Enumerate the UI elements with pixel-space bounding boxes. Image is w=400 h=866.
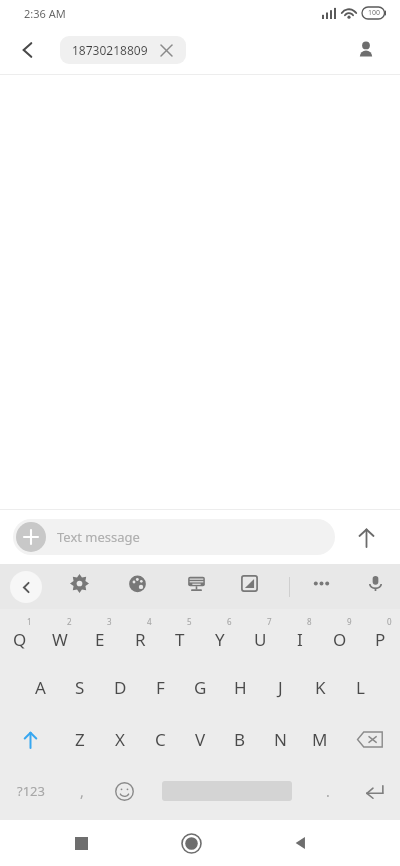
button[interactable]: Theme bbox=[118, 564, 156, 602]
staticText: M bbox=[312, 728, 328, 751]
staticText: G bbox=[194, 676, 207, 699]
button[interactable]: Keyboard layout bbox=[177, 564, 215, 602]
staticText: 2:36 AM bbox=[24, 6, 66, 21]
staticText: W bbox=[52, 628, 68, 651]
button[interactable]: 7 bbox=[240, 609, 280, 661]
button[interactable]: Attach bbox=[16, 522, 46, 552]
button[interactable]: Enter bbox=[348, 765, 400, 817]
button[interactable]: K bbox=[300, 661, 340, 713]
staticText: 0 bbox=[387, 616, 392, 627]
staticText: , bbox=[80, 782, 84, 801]
staticText: N bbox=[274, 728, 287, 751]
staticText: ?123 bbox=[17, 782, 45, 800]
staticText: Q bbox=[13, 628, 27, 651]
button[interactable]: Recents bbox=[58, 820, 104, 866]
staticText: H bbox=[234, 676, 247, 699]
button[interactable]: 8 bbox=[280, 609, 320, 661]
button[interactable]: L bbox=[340, 661, 380, 713]
button[interactable]: J bbox=[260, 661, 300, 713]
button[interactable]: B bbox=[220, 713, 260, 765]
staticText: C bbox=[155, 728, 166, 751]
staticText: B bbox=[234, 728, 246, 751]
staticText: K bbox=[315, 676, 326, 699]
staticText: R bbox=[135, 628, 146, 651]
staticText: P bbox=[375, 628, 386, 651]
staticText: 1 bbox=[27, 616, 32, 627]
button[interactable]: N bbox=[260, 713, 300, 765]
staticText: A bbox=[35, 676, 46, 699]
staticText: T bbox=[175, 628, 185, 651]
button[interactable]: Remove recipient bbox=[158, 42, 174, 58]
staticText: S bbox=[75, 676, 85, 699]
button[interactable]: Shift bbox=[0, 713, 60, 765]
button[interactable]: ?123 bbox=[0, 765, 62, 817]
button[interactable]: S bbox=[60, 661, 100, 713]
button[interactable]: Collapse toolbar bbox=[10, 571, 42, 603]
staticText: Text message bbox=[57, 528, 140, 546]
button[interactable]: 9 bbox=[320, 609, 360, 661]
button[interactable]: Emoji bbox=[102, 765, 146, 817]
button[interactable]: V bbox=[180, 713, 220, 765]
button[interactable]: 18730218809 bbox=[60, 36, 186, 64]
button[interactable]: Attach bbox=[13, 519, 335, 555]
staticText: D bbox=[114, 676, 127, 699]
button[interactable]: A bbox=[20, 661, 60, 713]
button[interactable]: Home bbox=[168, 820, 214, 866]
staticText: O bbox=[333, 628, 347, 651]
button[interactable]: Z bbox=[60, 713, 100, 765]
staticText: 4 bbox=[147, 616, 152, 627]
button[interactable]: G bbox=[180, 661, 220, 713]
button[interactable]: Send bbox=[346, 517, 386, 557]
staticText: X bbox=[115, 728, 125, 751]
button[interactable]: 5 bbox=[160, 609, 200, 661]
staticText: I bbox=[297, 628, 303, 651]
button[interactable]: M bbox=[300, 713, 340, 765]
staticText: 6 bbox=[227, 616, 232, 627]
staticText: 5 bbox=[187, 616, 192, 627]
staticText: 18730218809 bbox=[72, 42, 148, 58]
button[interactable]: Delete bbox=[340, 713, 400, 765]
staticText: 7 bbox=[267, 616, 272, 627]
button[interactable]: Handwriting bbox=[230, 564, 268, 602]
staticText: 2 bbox=[67, 616, 72, 627]
button[interactable]: Settings bbox=[60, 564, 98, 602]
button[interactable]: 6 bbox=[200, 609, 240, 661]
staticText: U bbox=[254, 628, 267, 651]
staticText: 3 bbox=[107, 616, 112, 627]
staticText: 9 bbox=[347, 616, 352, 627]
button[interactable]: F bbox=[140, 661, 180, 713]
staticText: 100 bbox=[368, 8, 381, 18]
button[interactable]: 0 bbox=[360, 609, 400, 661]
staticText: L bbox=[356, 676, 365, 699]
button[interactable]: More options bbox=[302, 564, 340, 602]
button[interactable]: 1 bbox=[0, 609, 40, 661]
staticText: . bbox=[326, 782, 330, 801]
button[interactable]: Back bbox=[8, 30, 48, 70]
button[interactable]: 4 bbox=[120, 609, 160, 661]
staticText: Y bbox=[215, 628, 225, 651]
button[interactable]: H bbox=[220, 661, 260, 713]
staticText: F bbox=[156, 676, 165, 699]
button[interactable]: X bbox=[100, 713, 140, 765]
button[interactable]: Back bbox=[278, 820, 324, 866]
staticText: E bbox=[95, 628, 105, 651]
button[interactable]: C bbox=[140, 713, 180, 765]
staticText: V bbox=[195, 728, 206, 751]
button[interactable]: D bbox=[100, 661, 140, 713]
staticText: Z bbox=[75, 728, 85, 751]
button[interactable]: 2 bbox=[40, 609, 80, 661]
staticText: 8 bbox=[307, 616, 312, 627]
button[interactable]: Voice input bbox=[356, 564, 394, 602]
button[interactable]: Contacts bbox=[346, 30, 386, 70]
staticText: J bbox=[278, 676, 283, 699]
button[interactable]: 3 bbox=[80, 609, 120, 661]
